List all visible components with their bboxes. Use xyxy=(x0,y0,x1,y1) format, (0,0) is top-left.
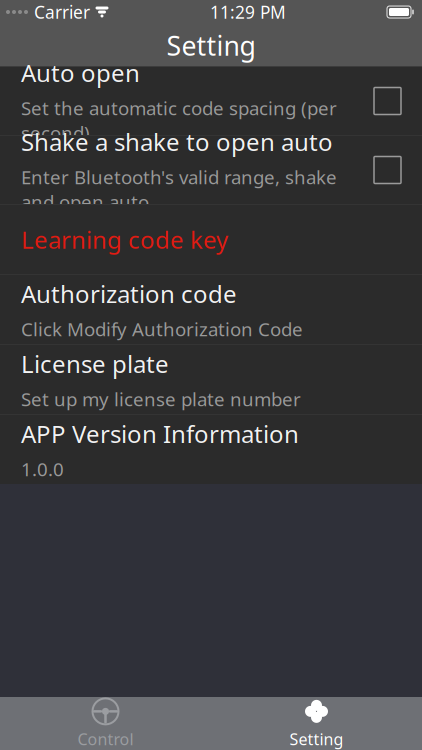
button[interactable]: Learning code key xyxy=(0,205,422,274)
button[interactable]: Shake a shake to open auto xyxy=(0,136,422,204)
button[interactable]: Setting xyxy=(211,697,422,750)
staticText: 1.0.0 xyxy=(21,456,64,481)
staticText: Set up my license plate number xyxy=(21,386,301,411)
staticText: 11:29 PM xyxy=(210,0,286,23)
staticText: Click Modify Authorization Code xyxy=(21,316,303,341)
staticText: Set the automatic code spacing (per seco… xyxy=(21,96,337,145)
button[interactable]: Control xyxy=(0,697,211,750)
staticText: Auto open xyxy=(21,57,140,89)
staticText: License plate xyxy=(21,348,169,380)
staticText: Setting xyxy=(289,728,343,750)
button[interactable]: APP Version Information xyxy=(0,415,422,484)
staticText: Enter Bluetooth's valid range, shake and… xyxy=(21,165,337,214)
button[interactable]: Auto open xyxy=(0,67,422,135)
staticText: APP Version Information xyxy=(21,418,299,450)
staticText: Control xyxy=(77,728,133,750)
staticText: Setting xyxy=(166,28,255,63)
staticText: Shake a shake to open auto xyxy=(21,126,333,158)
staticText: Learning code key xyxy=(21,224,228,255)
staticText: Authorization code xyxy=(21,278,237,310)
staticText: Carrier xyxy=(34,0,90,23)
button[interactable]: License plate xyxy=(0,345,422,414)
button[interactable]: Authorization code xyxy=(0,275,422,344)
